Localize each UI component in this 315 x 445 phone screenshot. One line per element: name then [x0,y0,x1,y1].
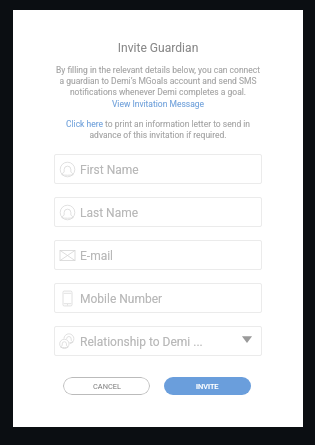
staticText: INVITE [196,382,219,391]
button[interactable]: Mobile Number [54,283,262,313]
staticText: E-mail [80,249,114,263]
button[interactable]: E-mail [54,240,262,270]
button[interactable]: First Name [54,154,262,184]
button[interactable]: Click here to print an information lette… [13,119,303,140]
other: Expand relationship options [241,335,253,347]
staticText: Mobile Number [80,292,163,306]
button[interactable]: Last Name [54,197,262,227]
staticText: Relationship to Demi ... [80,335,203,349]
staticText: Invite Guardian [13,41,303,55]
staticText: Last Name [80,206,139,220]
button[interactable]: View Invitation Message [13,99,303,109]
staticText: CANCEL [93,382,121,391]
staticText: By filling in the relevant details below… [13,65,303,97]
button[interactable]: CANCEL [63,377,150,395]
button[interactable]: INVITE [164,377,251,395]
staticText: First Name [80,163,139,177]
button[interactable]: Relationship to Demi ... [54,326,262,356]
